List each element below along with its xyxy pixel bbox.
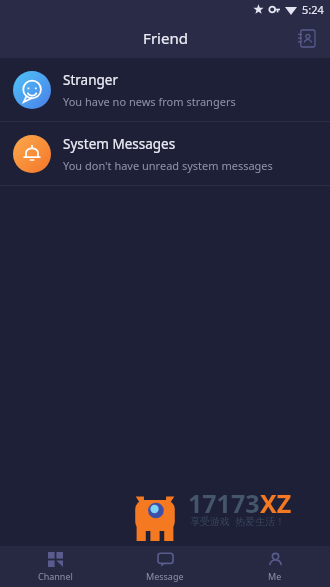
staticText: You have no news from strangers (63, 94, 236, 109)
staticText: 17173 (188, 486, 260, 520)
staticText: Friend (143, 28, 188, 48)
button[interactable]: Stranger (0, 58, 330, 121)
staticText: Me (268, 570, 282, 582)
button[interactable]: Me (220, 546, 330, 587)
staticText: 享受游戏 热爱生活！ (190, 514, 286, 528)
staticText: Message (146, 570, 184, 582)
button[interactable]: Contacts (290, 22, 322, 54)
staticText: XZ (260, 486, 292, 520)
staticText: You don't have unread system messages (63, 158, 273, 173)
staticText: Stranger (63, 71, 118, 89)
button[interactable]: System Messages (0, 122, 330, 185)
button[interactable]: Channel (0, 546, 110, 587)
staticText: System Messages (63, 135, 176, 153)
staticText: 5:24 (302, 2, 324, 17)
staticText: Channel (38, 570, 73, 582)
button[interactable]: Message (110, 546, 220, 587)
